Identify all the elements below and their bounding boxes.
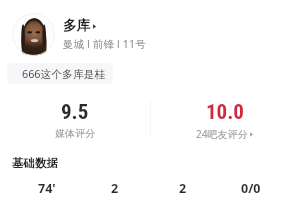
- staticText: 曼城 l 前锋 l 11号: [63, 37, 146, 51]
- staticText: 基础数据: [12, 156, 58, 170]
- button[interactable]: 9.5: [0, 100, 150, 142]
- staticText: 10.0: [206, 100, 244, 125]
- button[interactable]: 10.0: [150, 100, 300, 142]
- button[interactable]: 666这个多库是桂: [7, 63, 113, 84]
- staticText: 24吧友评分: [196, 127, 248, 141]
- staticText: 媒体评分: [55, 127, 95, 140]
- staticText: 666这个多库是桂: [22, 66, 106, 81]
- staticText: 多库: [63, 17, 90, 34]
- staticText: 0/0: [241, 180, 261, 197]
- staticText: 9.5: [61, 100, 89, 125]
- staticText: 2: [179, 180, 187, 197]
- button[interactable]: 多库: [12, 13, 146, 56]
- staticText: 74': [38, 180, 56, 197]
- staticText: 2: [111, 180, 119, 197]
